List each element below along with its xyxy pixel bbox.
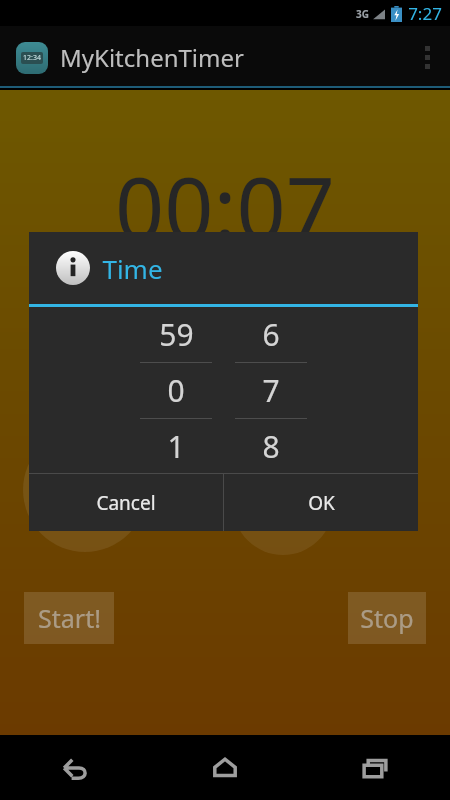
button[interactable]: 8 (235, 419, 307, 473)
staticText: MyKitchenTimer (60, 41, 244, 74)
staticText: 12:34 (23, 53, 41, 63)
staticText: 7 (262, 370, 280, 411)
button[interactable]: More options (404, 26, 450, 88)
button[interactable]: Back (0, 735, 150, 800)
button[interactable]: Cancel (29, 474, 223, 531)
button[interactable]: Start! (24, 592, 114, 644)
staticText: 6 (262, 314, 280, 355)
button[interactable]: Stop (348, 592, 426, 644)
staticText: 00:07 (115, 148, 335, 265)
button[interactable]: OK (224, 474, 418, 531)
button[interactable]: 59 (140, 307, 212, 362)
staticText: Start! (38, 601, 101, 635)
staticText: 1 (167, 426, 185, 467)
staticText: 3G (356, 7, 369, 21)
button[interactable]: 1 (140, 419, 212, 473)
staticText: Cancel (96, 490, 156, 516)
staticText: Stop (360, 601, 414, 635)
staticText: Time (102, 251, 163, 286)
button[interactable]: Home (150, 735, 300, 800)
staticText: 8 (262, 426, 280, 467)
staticText: OK (308, 490, 335, 516)
staticText: seconds (221, 502, 314, 535)
staticText: 0 (167, 370, 185, 411)
button[interactable]: Recent apps (300, 735, 450, 800)
staticText: 7:27 (408, 2, 442, 25)
button[interactable]: 6 (235, 307, 307, 362)
staticText: 59 (159, 314, 194, 355)
button[interactable]: 7 (235, 363, 307, 418)
button[interactable]: 0 (140, 363, 212, 418)
